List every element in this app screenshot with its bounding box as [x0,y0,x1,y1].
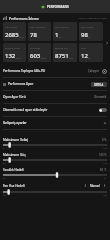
staticText: 30 [3,194,6,197]
staticText: 8751 [55,52,69,60]
staticText: Performans Toplayıcı (Alt+F5) [3,69,46,73]
staticText: % [88,35,90,38]
staticText: 2685 [5,31,19,39]
staticText: 100 [103,194,107,197]
button[interactable]: KULLANIM [79,22,103,41]
button[interactable]: Performans Toplayıcı (Alt+F5) [0,65,110,77]
staticText: 133 [103,162,107,165]
staticText: PERFORMANS [47,5,69,9]
staticText: 12 [81,52,88,60]
staticText: 91 [104,177,107,180]
button[interactable]: Next option [102,183,107,188]
staticText: Fan Hızı Hedefi [3,184,25,188]
button[interactable]: Otomatik mod ayarı etkinleştir [0,104,110,116]
staticText: Otomatik mod ayarı etkinleştir [3,108,48,112]
staticText: MHz [19,35,25,38]
staticText: MHz [16,56,22,59]
staticText: 100 % [99,153,107,157]
staticText: °C [37,35,40,38]
staticText: Çalışıyor [88,69,100,73]
button[interactable]: Fan Hızı Hedefi [0,181,110,190]
button[interactable]: Gelişmiş ayarlar [0,117,110,129]
button[interactable]: Previous [83,183,88,188]
button[interactable]: GPU VOLTAJ [53,22,77,41]
button[interactable]: SIFIRLA [91,82,107,87]
staticText: GPU SAATİ [5,25,18,28]
staticText: 50 [3,162,6,165]
staticText: SIFIRLA [94,83,104,86]
staticText: Performans Ayarı [8,82,34,86]
staticText: BELLEK SAATİ [5,46,21,49]
staticText: 83 °C [100,168,107,172]
button[interactable]: Sıcaklık Hedefi [0,168,110,180]
button[interactable]: GPU SICAKLIK [28,22,51,41]
staticText: Otomatik [94,95,107,99]
button[interactable]: BELLEK KUL. [53,43,77,62]
staticText: GPU SICAKLIK [30,25,46,28]
staticText: W [88,56,91,59]
staticText: BELLEK KUL. [55,46,70,49]
button[interactable]: FAN HIZI [28,43,51,62]
staticText: Sıcaklık Hedefi [3,168,24,172]
button[interactable]: Toggle automatic mode [99,108,107,112]
staticText: Gelişmiş ayarlar [3,121,27,125]
staticText: 0 [3,147,5,150]
staticText: mV [59,35,63,38]
button[interactable]: BELLEK SAATİ [3,43,26,62]
button[interactable]: GPU SAATİ [3,22,26,41]
staticText: GPU VOLTAJ [55,25,69,28]
button[interactable]: Settings [102,69,107,74]
staticText: Performans İzleme [9,16,39,20]
staticText: MB [69,56,73,59]
staticText: NVIDIA GeForce RTX 4080 [78,16,107,19]
staticText: Manuel [90,184,100,188]
staticText: 132 [5,52,16,60]
staticText: RPM [41,56,47,59]
button[interactable]: Oyun Ayar Türü [0,91,110,103]
staticText: 100 [103,147,107,150]
staticText: GÜÇ [81,46,87,49]
staticText: 98 [81,31,88,39]
button[interactable]: 30 [0,190,110,197]
button[interactable]: GÜÇ [79,43,103,62]
other: App logo [41,5,45,9]
staticText: 60 [3,177,6,180]
staticText: 78 [30,31,37,39]
button[interactable]: Performans Ayarı [0,78,110,90]
staticText: 603 [30,52,41,60]
staticText: 0 % [102,138,107,142]
button[interactable]: Maksimum Voltaj [0,138,110,150]
staticText: Maksimum Güç [3,153,26,157]
staticText: 1 [55,31,59,39]
staticText: Maksimum Voltaj [3,138,29,142]
button[interactable]: Maksimum Güç [0,153,110,165]
staticText: FAN HIZI [30,46,41,49]
staticText: Oyun Ayar Türü [3,95,26,99]
staticText: KULLANIM [81,25,94,28]
button[interactable]: Next [103,39,110,46]
